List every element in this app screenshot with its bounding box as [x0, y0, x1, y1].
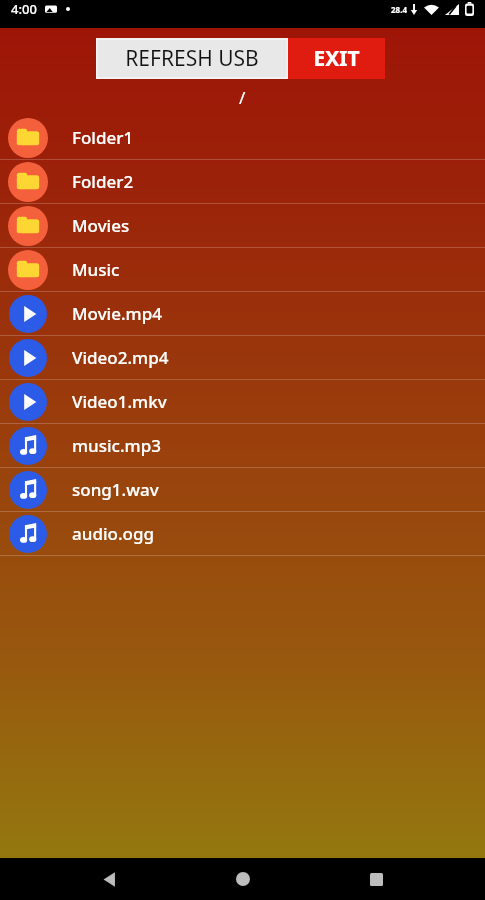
staticText: song1.wav — [72, 478, 159, 501]
button[interactable]: audio.ogg — [0, 512, 485, 556]
staticText: 4:00 — [11, 0, 37, 18]
staticText: 28.4 — [391, 4, 407, 15]
staticText: Movie.mp4 — [72, 302, 162, 325]
button[interactable]: Video2.mp4 — [0, 336, 485, 380]
button[interactable]: music.mp3 — [0, 424, 485, 468]
button[interactable]: Movies — [0, 204, 485, 248]
staticText: Folder1 — [72, 126, 134, 149]
button[interactable]: Recent apps — [352, 858, 400, 900]
staticText: EXIT — [313, 44, 360, 73]
staticText: Video1.mkv — [72, 390, 167, 413]
staticText: Music — [72, 258, 120, 281]
staticText: REFRESH USB — [125, 44, 259, 73]
button[interactable]: Movie.mp4 — [0, 292, 485, 336]
staticText: Folder2 — [72, 170, 134, 193]
button[interactable]: REFRESH USB — [96, 38, 288, 79]
staticText: audio.ogg — [72, 522, 154, 545]
button[interactable]: Folder2 — [0, 160, 485, 204]
button[interactable]: EXIT — [288, 38, 385, 79]
button[interactable]: Home — [219, 858, 267, 900]
button[interactable]: Back — [85, 858, 133, 900]
staticText: Video2.mp4 — [72, 346, 169, 369]
staticText: Movies — [72, 214, 130, 237]
button[interactable]: Folder1 — [0, 116, 485, 160]
staticText: music.mp3 — [72, 434, 161, 457]
button[interactable]: Music — [0, 248, 485, 292]
staticText: / — [239, 86, 246, 109]
button[interactable]: song1.wav — [0, 468, 485, 512]
button[interactable]: Video1.mkv — [0, 380, 485, 424]
